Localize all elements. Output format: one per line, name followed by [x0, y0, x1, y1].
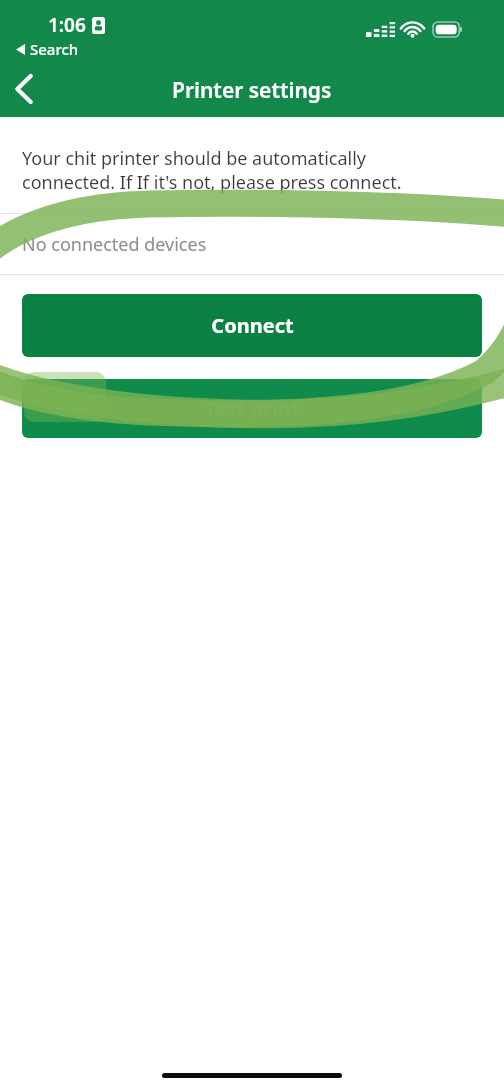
button[interactable]: Test print — [22, 379, 482, 438]
staticText: Test print — [204, 395, 300, 422]
button[interactable]: Back — [0, 66, 48, 112]
staticText: No connected devices — [22, 232, 207, 257]
button[interactable]: No connected devices — [0, 214, 504, 274]
staticText: 1:06 — [48, 12, 86, 38]
staticText: Your chit printer should be automaticall… — [22, 146, 402, 194]
staticText: Printer settings — [172, 76, 332, 105]
staticText: Connect — [211, 312, 294, 339]
button[interactable]: Search — [14, 38, 81, 60]
staticText: Search — [30, 39, 79, 59]
button[interactable]: Connect — [22, 294, 482, 357]
